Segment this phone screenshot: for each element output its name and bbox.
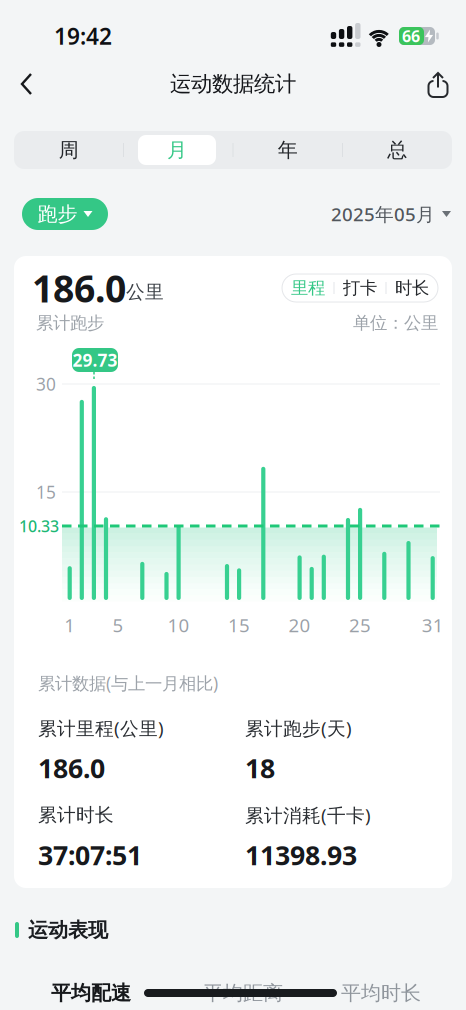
button[interactable]: 周 xyxy=(29,133,109,167)
button[interactable]: 跑步 xyxy=(22,198,108,230)
button[interactable]: 年 xyxy=(248,133,328,167)
staticText: 10 xyxy=(168,613,190,637)
staticText: 平均距离 xyxy=(203,981,283,1005)
staticText: 时长 xyxy=(395,277,429,299)
button[interactable]: 里程 xyxy=(283,275,333,301)
staticText: 周 xyxy=(59,138,79,162)
staticText: 累计里程(公里) xyxy=(38,716,164,740)
staticText: 5 xyxy=(113,613,124,637)
staticText: 单位：公里 xyxy=(353,312,438,334)
staticText: 累计跑步 xyxy=(36,312,104,334)
staticText: 累计消耗(千卡) xyxy=(245,803,371,827)
staticText: 25 xyxy=(349,613,371,637)
staticText: 15 xyxy=(228,613,250,637)
staticText: 里程 xyxy=(291,277,325,299)
staticText: 平均配速 xyxy=(51,981,131,1005)
button[interactable]: Share xyxy=(427,70,449,97)
staticText: 18 xyxy=(245,750,275,786)
staticText: 年 xyxy=(278,138,298,162)
staticText: 运动表现 xyxy=(28,918,108,942)
button[interactable]: 平均配速 xyxy=(26,976,156,1010)
button[interactable]: 时长 xyxy=(387,275,437,301)
staticText: 累计时长 xyxy=(38,803,114,826)
button[interactable]: Back xyxy=(11,63,43,105)
button[interactable]: 平均距离 xyxy=(178,976,308,1010)
staticText: 2025年05月 xyxy=(331,202,435,226)
staticText: 跑步 xyxy=(37,202,77,226)
staticText: 月 xyxy=(167,138,187,162)
staticText: 打卡 xyxy=(343,277,377,299)
staticText: 186.0 xyxy=(38,750,105,786)
button[interactable]: 打卡 xyxy=(335,275,385,301)
button[interactable]: 2025年05月 xyxy=(331,198,451,230)
staticText: 公里 xyxy=(126,280,164,303)
staticText: 31 xyxy=(422,613,444,637)
staticText: 11398.93 xyxy=(245,837,357,873)
staticText: 186.0 xyxy=(32,263,126,313)
staticText: 30 xyxy=(36,372,56,395)
staticText: 10.33 xyxy=(19,515,59,537)
button[interactable]: 月 xyxy=(138,135,216,165)
staticText: 运动数据统计 xyxy=(170,71,296,97)
staticText: 累计跑步(天) xyxy=(245,716,352,740)
staticText: 累计数据(与上一月相比) xyxy=(38,671,218,694)
staticText: 平均时长 xyxy=(341,981,421,1005)
button[interactable]: 总 xyxy=(357,133,437,167)
staticText: 1 xyxy=(64,613,75,637)
staticText: 20 xyxy=(289,613,311,637)
staticText: 19:42 xyxy=(54,21,112,51)
staticText: 总 xyxy=(387,138,407,162)
button[interactable]: 平均时长 xyxy=(316,976,446,1010)
staticText: 37:07:51 xyxy=(38,837,142,873)
staticText: 15 xyxy=(36,480,56,503)
staticText: 66 xyxy=(402,25,420,47)
staticText: 29.73 xyxy=(72,348,117,371)
